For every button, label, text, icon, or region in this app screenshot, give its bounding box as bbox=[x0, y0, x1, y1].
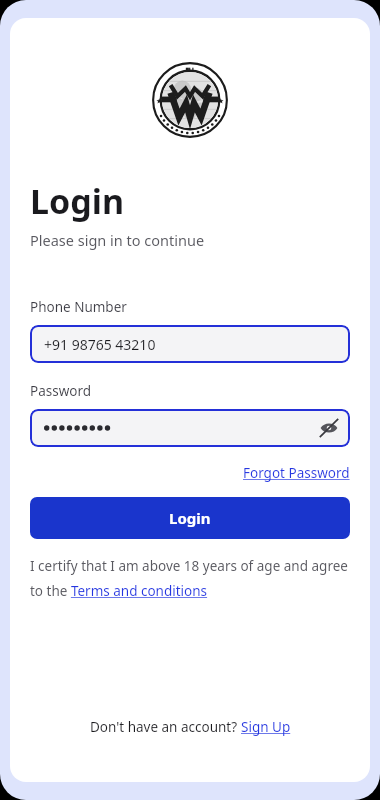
button[interactable]: I certify that I am above 18 years of ag… bbox=[30, 557, 350, 600]
button[interactable]: Forgot Password bbox=[243, 464, 350, 482]
button[interactable]: Hide password bbox=[30, 409, 350, 447]
staticText: +91 98765 43210 bbox=[44, 335, 156, 354]
staticText: Login bbox=[30, 178, 125, 224]
staticText: Phone Number bbox=[30, 298, 127, 316]
button[interactable]: Hide password bbox=[316, 415, 342, 441]
button[interactable]: +91 98765 43210 bbox=[30, 325, 350, 363]
button[interactable]: Sign Up bbox=[241, 718, 291, 736]
staticText: Login bbox=[169, 508, 211, 528]
staticText: Password bbox=[30, 382, 92, 400]
button[interactable]: Login bbox=[30, 497, 350, 539]
staticText: Forgot Password bbox=[243, 464, 350, 482]
staticText: Sign Up bbox=[241, 718, 291, 736]
staticText: Please sign in to continue bbox=[30, 230, 205, 250]
staticText: Don't have an account? bbox=[90, 718, 241, 736]
other: WII Sports Fantasy logo bbox=[152, 62, 228, 138]
